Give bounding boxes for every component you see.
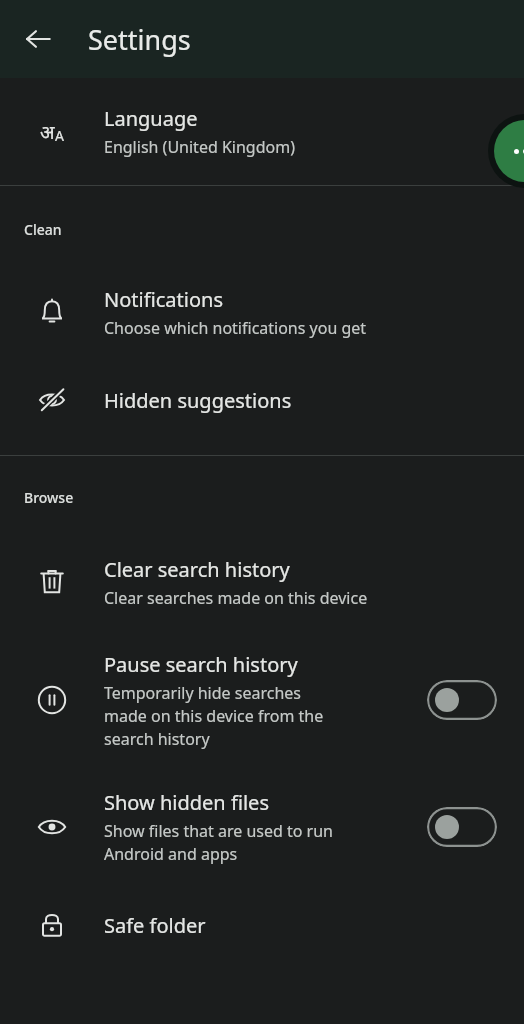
staticText: Language bbox=[104, 105, 198, 132]
button[interactable]: Show hidden files bbox=[0, 777, 524, 877]
staticText: Clear search history bbox=[104, 556, 290, 583]
staticText: Notifications bbox=[104, 286, 223, 313]
button[interactable]: Clear search history bbox=[0, 543, 524, 621]
staticText: Temporarily hide searches made on this d… bbox=[104, 682, 324, 750]
button[interactable]: Toggle bbox=[427, 680, 497, 720]
staticText: Browse bbox=[24, 488, 74, 507]
staticText: Choose which notifications you get bbox=[104, 317, 367, 339]
button[interactable]: Notifications bbox=[0, 273, 524, 351]
staticText: Show hidden files bbox=[104, 789, 269, 816]
staticText: Show files that are used to run Android … bbox=[104, 820, 333, 865]
staticText: English (United Kingdom) bbox=[104, 136, 295, 158]
staticText: Clear searches made on this device bbox=[104, 587, 368, 609]
staticText: A bbox=[55, 126, 64, 145]
staticText: Clean bbox=[24, 220, 62, 239]
staticText: Hidden suggestions bbox=[104, 387, 292, 414]
button[interactable]: Hidden suggestions bbox=[0, 371, 524, 429]
button[interactable]: अ bbox=[0, 78, 524, 185]
button[interactable]: Safe folder bbox=[0, 895, 524, 955]
button[interactable]: Toggle bbox=[427, 807, 497, 847]
button[interactable]: More options bbox=[488, 114, 524, 188]
staticText: अ bbox=[40, 119, 55, 145]
staticText: Safe folder bbox=[104, 912, 206, 939]
staticText: Pause search history bbox=[104, 651, 298, 678]
button[interactable]: Pause search history bbox=[0, 641, 524, 759]
staticText: Settings bbox=[88, 21, 191, 58]
button[interactable]: Back bbox=[14, 15, 62, 63]
